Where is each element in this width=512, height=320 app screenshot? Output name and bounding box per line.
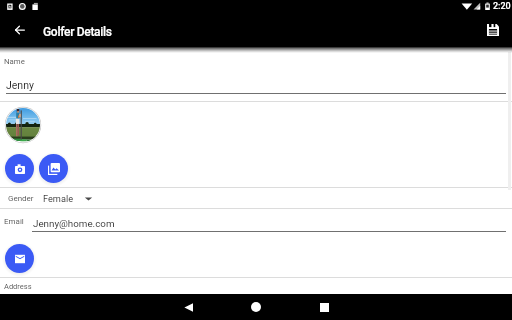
button[interactable]: Send email xyxy=(5,244,34,273)
staticText: Gender xyxy=(8,194,34,203)
staticText: Female xyxy=(43,193,74,204)
staticText: Address xyxy=(4,282,32,291)
staticText: Jenny xyxy=(6,79,34,91)
staticText: Jenny@home.com xyxy=(33,218,115,229)
staticText: Golfer Details xyxy=(43,25,112,39)
button[interactable]: Back xyxy=(4,14,36,46)
button[interactable]: Save xyxy=(477,14,509,46)
button[interactable]: Home xyxy=(239,294,273,320)
staticText: Email xyxy=(4,217,24,226)
staticText: 2:20 xyxy=(493,1,511,12)
button[interactable]: Back xyxy=(171,294,205,320)
button[interactable]: Gender xyxy=(0,188,512,208)
staticText: Name xyxy=(4,57,25,66)
button[interactable]: Pick from gallery xyxy=(39,154,68,183)
button[interactable]: Take photo xyxy=(5,154,34,183)
button[interactable]: Recent apps xyxy=(307,294,341,320)
